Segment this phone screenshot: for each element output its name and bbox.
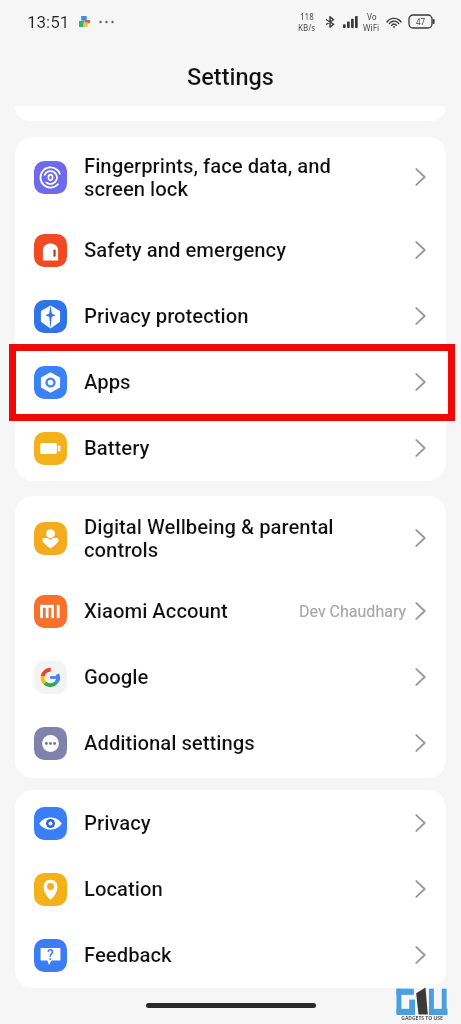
staticText: Xiaomi Account [84,599,299,623]
staticText: Location [84,877,415,901]
button[interactable]: ? [15,922,446,988]
staticText: 13:51 [27,12,70,32]
staticText: 118 [300,11,314,22]
staticText: Vo [367,11,377,22]
button[interactable]: Digital Wellbeing & parental controls [15,498,446,578]
staticText: Settings [187,63,274,91]
button[interactable]: Location [15,856,446,922]
staticText: KB/s [298,22,316,33]
button[interactable]: Safety and emergency [15,217,446,283]
staticText: 47 [416,16,426,27]
staticText: Feedback [84,943,415,967]
staticText: ? [47,947,54,963]
button[interactable]: Privacy protection [15,283,446,349]
staticText: Digital Wellbeing & parental controls [84,515,415,562]
staticText: Google [84,665,415,689]
staticText: Apps [84,370,415,394]
button[interactable]: Apps [15,349,446,415]
staticText: Fingerprints, face data, and screen lock [84,154,415,201]
staticText: WiFi [363,22,380,33]
staticText: Privacy protection [84,304,415,328]
button[interactable]: Privacy [15,790,446,856]
button[interactable]: Additional settings [15,710,446,776]
staticText: Privacy [84,811,415,835]
staticText: Dev Chaudhary [299,602,407,621]
staticText: Battery [84,436,415,460]
button[interactable]: Xiaomi Account [15,578,446,644]
staticText: Safety and emergency [84,238,415,262]
staticText: Additional settings [84,731,415,755]
staticText: GADGETS TO USE [401,1015,443,1022]
button[interactable]: Google [15,644,446,710]
button[interactable]: Fingerprints, face data, and screen lock [15,137,446,217]
button[interactable]: Battery [15,415,446,481]
